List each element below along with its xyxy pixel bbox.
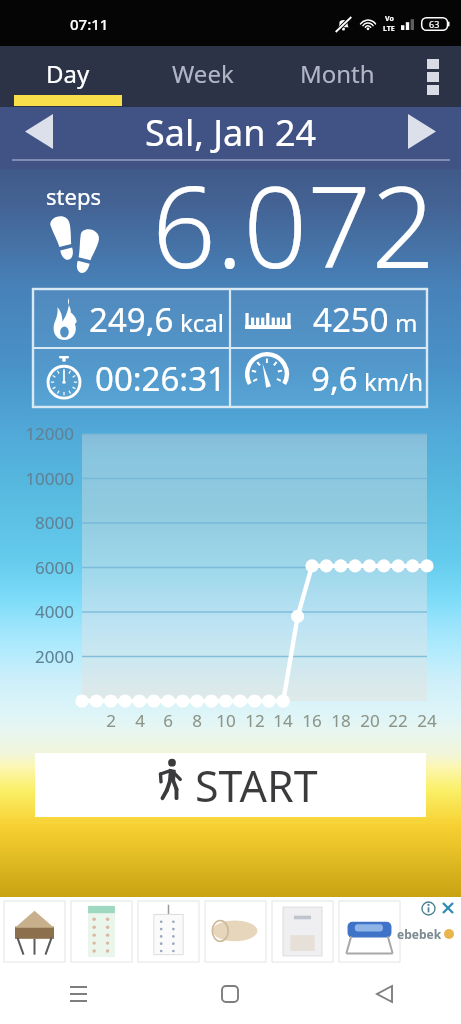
button[interactable]: Previous day: [25, 114, 53, 149]
button[interactable]: Month: [270, 46, 405, 107]
staticText: 18: [326, 709, 356, 732]
button[interactable]: 249,6: [33, 289, 230, 348]
staticText: m: [395, 306, 418, 339]
button[interactable]: [271, 898, 334, 966]
staticText: km/h: [364, 365, 424, 398]
button[interactable]: 9,6: [230, 348, 427, 407]
staticText: 4000: [0, 600, 74, 623]
staticText: kcal: [180, 306, 224, 339]
staticText: 63: [429, 18, 440, 30]
staticText: ebebek: [397, 926, 442, 942]
button[interactable]: 4250: [230, 289, 427, 348]
staticText: 12: [240, 709, 270, 732]
staticText: 07:11: [70, 14, 109, 34]
staticText: START: [195, 756, 318, 815]
button[interactable]: Next day: [408, 114, 436, 149]
staticText: 6.072: [152, 148, 436, 301]
staticText: 4: [125, 709, 155, 732]
staticText: 2000: [0, 645, 74, 668]
staticText: steps: [46, 181, 101, 211]
button[interactable]: [204, 898, 267, 966]
staticText: 24: [412, 709, 442, 732]
button[interactable]: Recent apps: [0, 968, 153, 1024]
button[interactable]: Close ad: [440, 900, 456, 916]
button[interactable]: Week: [136, 46, 270, 107]
button[interactable]: More options: [405, 46, 461, 107]
staticText: 4250: [313, 297, 389, 342]
button[interactable]: [137, 898, 200, 966]
staticText: 10: [211, 709, 241, 732]
staticText: 249,6: [89, 297, 174, 342]
staticText: Week: [172, 57, 234, 90]
staticText: Month: [300, 57, 375, 90]
button[interactable]: Day: [0, 46, 136, 107]
staticText: Day: [46, 57, 90, 90]
staticText: Vo: [385, 14, 394, 24]
staticText: 6: [153, 709, 183, 732]
staticText: 12000: [0, 422, 74, 445]
staticText: 6000: [0, 556, 74, 579]
staticText: 10000: [0, 467, 74, 490]
staticText: 14: [268, 709, 298, 732]
staticText: 2: [96, 709, 126, 732]
staticText: 8: [182, 709, 212, 732]
button[interactable]: [3, 898, 66, 966]
button[interactable]: Ad info: [421, 901, 436, 916]
button[interactable]: START: [35, 753, 426, 817]
button[interactable]: Home: [153, 968, 307, 1024]
staticText: LTE: [383, 24, 395, 34]
button[interactable]: Back: [307, 968, 461, 1024]
button[interactable]: 00:26:31: [33, 348, 230, 407]
staticText: 00:26:31: [95, 356, 226, 401]
staticText: Sal, Jan 24: [145, 108, 317, 157]
staticText: 9,6: [311, 356, 358, 401]
button[interactable]: [338, 898, 401, 966]
staticText: 22: [383, 709, 413, 732]
button[interactable]: [70, 898, 133, 966]
staticText: 8000: [0, 511, 74, 534]
staticText: 20: [355, 709, 385, 732]
staticText: 16: [297, 709, 327, 732]
